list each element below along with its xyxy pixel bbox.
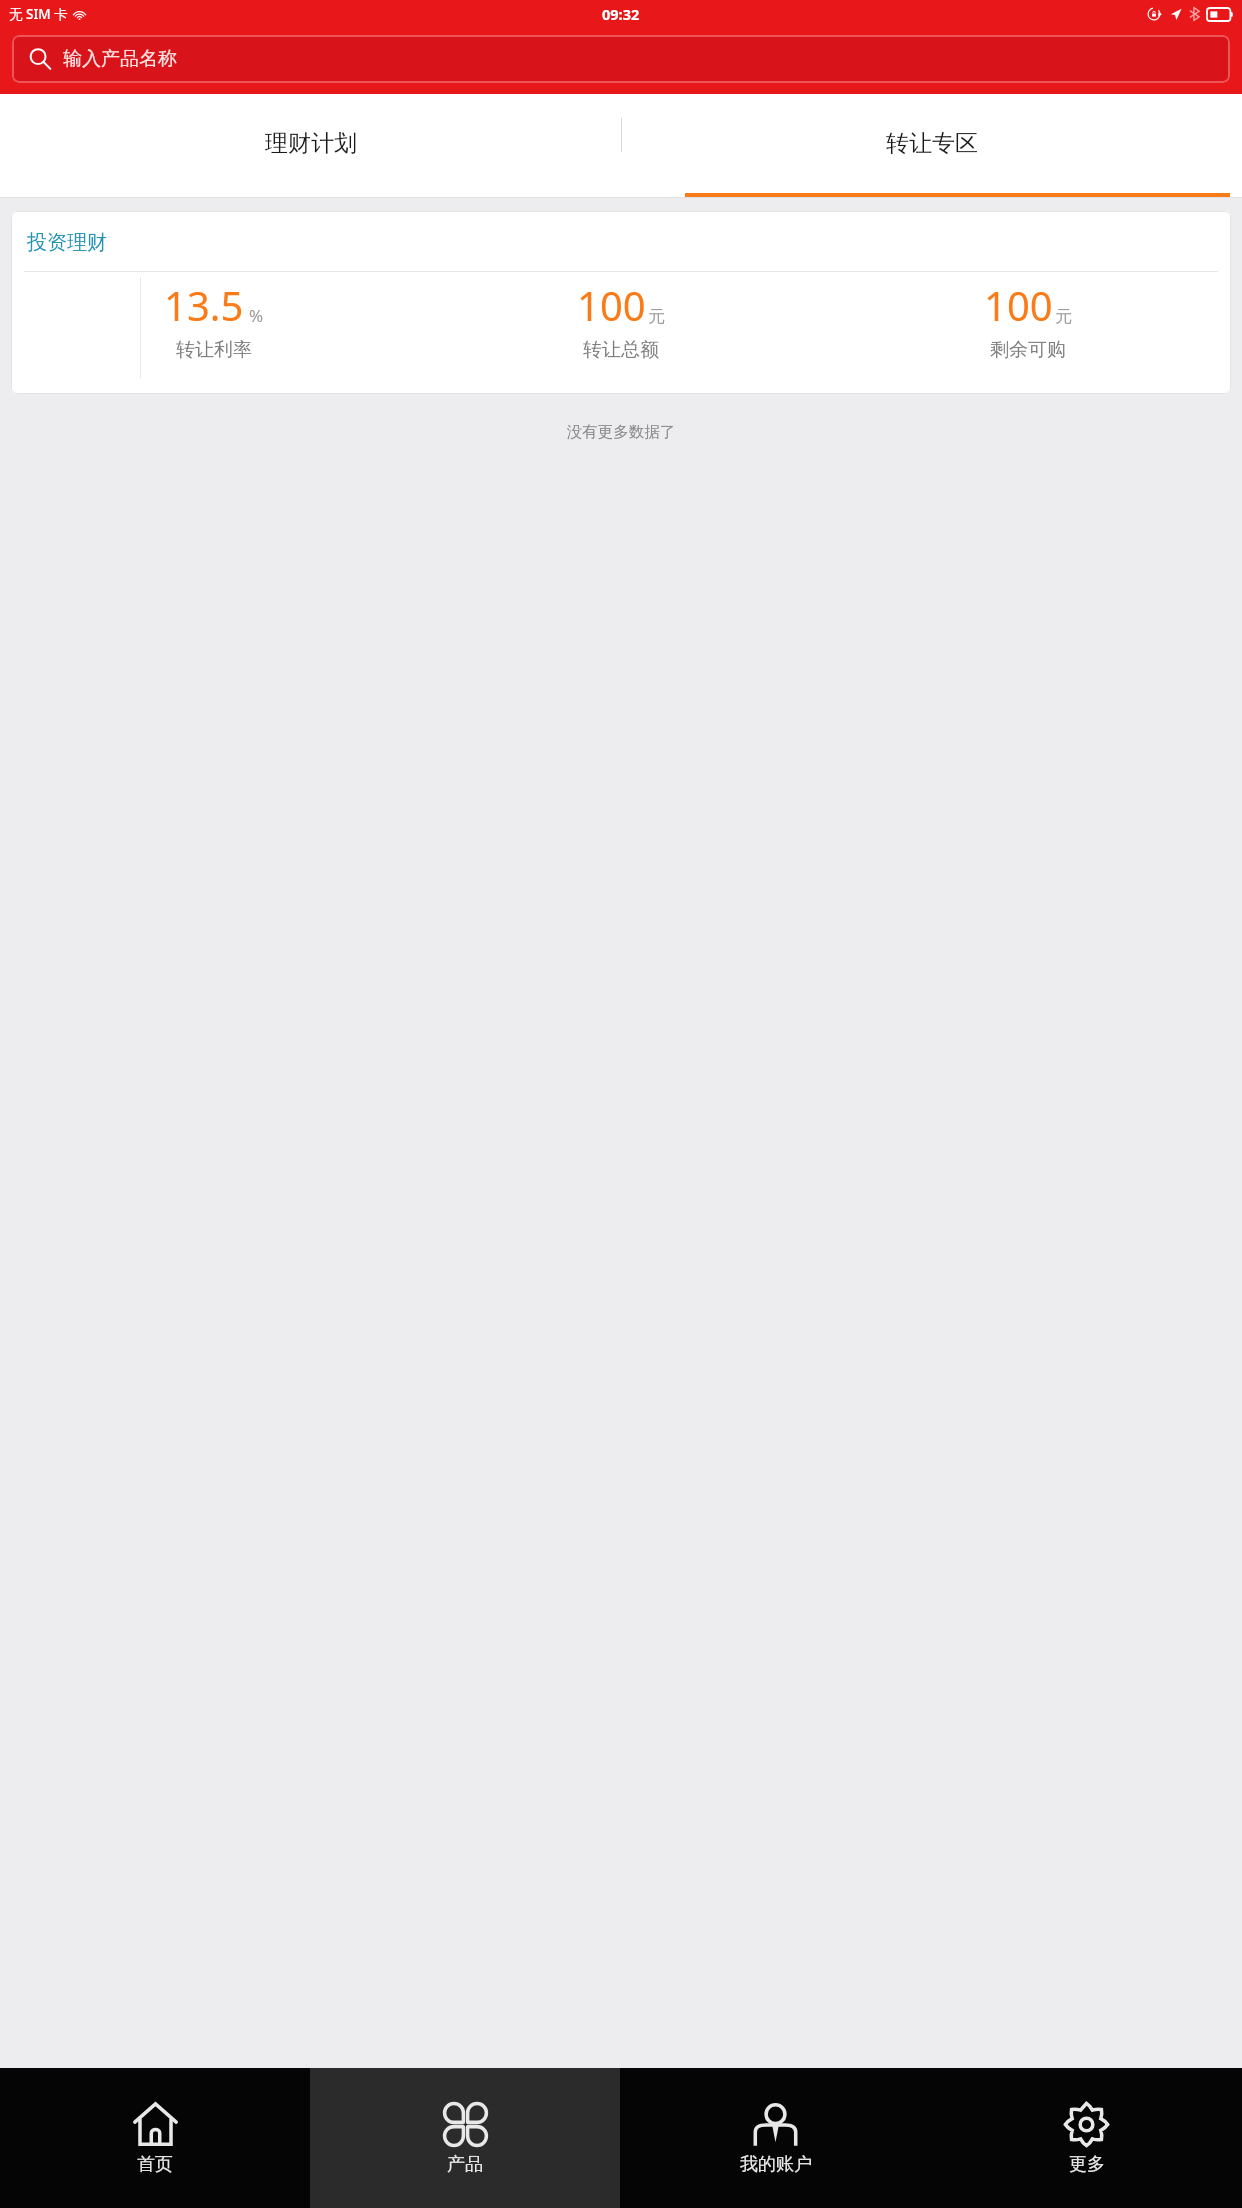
button[interactable]: 首页: [0, 2068, 310, 2208]
staticText: 转让利率: [176, 338, 252, 362]
staticText: 理财计划: [265, 129, 357, 158]
staticText: 13.5: [164, 278, 244, 332]
staticText: 09:32: [602, 4, 640, 24]
button[interactable]: 产品: [310, 2068, 620, 2208]
staticText: 产品: [447, 2153, 483, 2176]
button[interactable]: 输入产品名称: [12, 35, 1230, 83]
staticText: 无 SIM 卡: [9, 5, 68, 23]
staticText: 剩余可购: [990, 338, 1066, 362]
staticText: 100: [577, 278, 646, 332]
staticText: 投资理财: [27, 230, 107, 255]
staticText: 首页: [137, 2153, 173, 2176]
staticText: 输入产品名称: [63, 47, 177, 71]
button[interactable]: 投资理财: [11, 211, 1231, 394]
staticText: 元: [1055, 306, 1072, 327]
button[interactable]: 更多: [931, 2068, 1242, 2208]
staticText: 100: [984, 278, 1053, 332]
button[interactable]: 转让专区: [621, 94, 1242, 198]
staticText: 转让总额: [583, 338, 659, 362]
button[interactable]: 理财计划: [0, 94, 621, 198]
staticText: 更多: [1069, 2153, 1105, 2176]
staticText: 没有更多数据了: [0, 422, 1242, 442]
staticText: %: [249, 304, 264, 327]
staticText: 我的账户: [740, 2153, 812, 2176]
staticText: 元: [648, 306, 665, 327]
button[interactable]: 我的账户: [620, 2068, 931, 2208]
staticText: 转让专区: [886, 129, 978, 158]
